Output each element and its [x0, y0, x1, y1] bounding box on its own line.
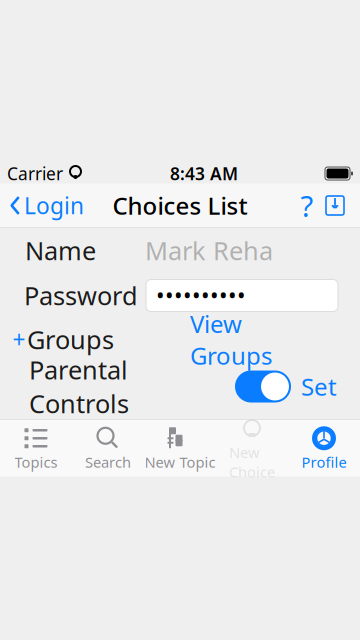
button[interactable]: New Topic: [144, 421, 216, 475]
button[interactable]: ••••••••••: [146, 279, 338, 311]
button[interactable]: View Groups: [190, 324, 337, 354]
staticText: Password: [24, 279, 138, 312]
staticText: Login: [24, 190, 84, 220]
button[interactable]: Set: [291, 370, 347, 402]
button[interactable]: Login: [0, 184, 84, 226]
staticText: New Choice: [229, 442, 275, 481]
staticText: New Topic: [144, 452, 215, 472]
staticText: Topics: [14, 452, 57, 472]
staticText: Profile: [301, 452, 346, 472]
staticText: Name: [25, 234, 96, 267]
button[interactable]: Profile: [288, 421, 360, 475]
staticText: Groups: [27, 323, 114, 356]
button[interactable]: Help: [294, 190, 320, 220]
button[interactable]: New Choice: [216, 411, 288, 484]
staticText: 8:43 AM: [170, 162, 238, 185]
button[interactable]: Parental Controls: [235, 370, 291, 402]
staticText: Carrier: [7, 162, 63, 185]
staticText: Mark Reha: [145, 234, 273, 267]
button[interactable]: Search: [72, 421, 144, 475]
button[interactable]: Import: [320, 190, 350, 220]
staticText: Parental Controls: [29, 353, 129, 420]
button[interactable]: Topics: [0, 421, 72, 475]
staticText: ••••••••••: [156, 280, 246, 310]
button[interactable]: Add Group: [11, 324, 27, 354]
staticText: Search: [85, 452, 131, 472]
staticText: Choices List: [112, 190, 247, 221]
staticText: Set: [301, 371, 337, 402]
staticText: ?: [300, 186, 313, 225]
staticText: +: [12, 324, 25, 354]
staticText: View Groups: [190, 308, 272, 371]
